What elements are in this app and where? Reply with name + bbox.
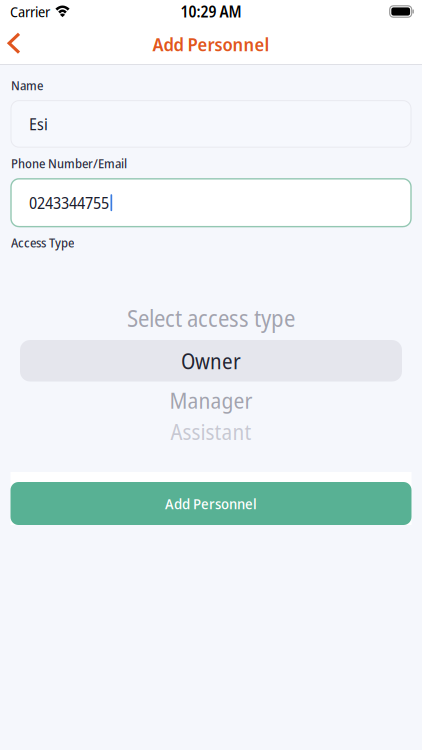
staticText: Esi [29,113,48,135]
staticText: Add Personnel [152,31,269,57]
staticText: Add Personnel [165,493,257,514]
staticText: 10:29 AM [180,1,241,22]
button[interactable]: Back [0,24,36,64]
button[interactable]: 0243344755 [11,179,411,227]
button[interactable]: Esi [11,101,411,147]
staticText: Owner [181,346,241,376]
button[interactable]: Add Personnel [0,472,422,525]
button[interactable]: Owner [0,338,422,384]
staticText: Name [11,77,43,94]
button[interactable]: Assistant [0,416,422,446]
staticText: Assistant [170,417,251,446]
staticText: Select access type [127,302,295,334]
staticText: Carrier [10,1,50,21]
staticText: Access Type [11,234,74,251]
button[interactable]: Select access type [0,298,422,338]
staticText: Manager [169,385,252,415]
staticText: Phone Number/Email [11,155,127,172]
button[interactable]: Manager [0,384,422,416]
staticText: 0243344755 [29,192,109,214]
